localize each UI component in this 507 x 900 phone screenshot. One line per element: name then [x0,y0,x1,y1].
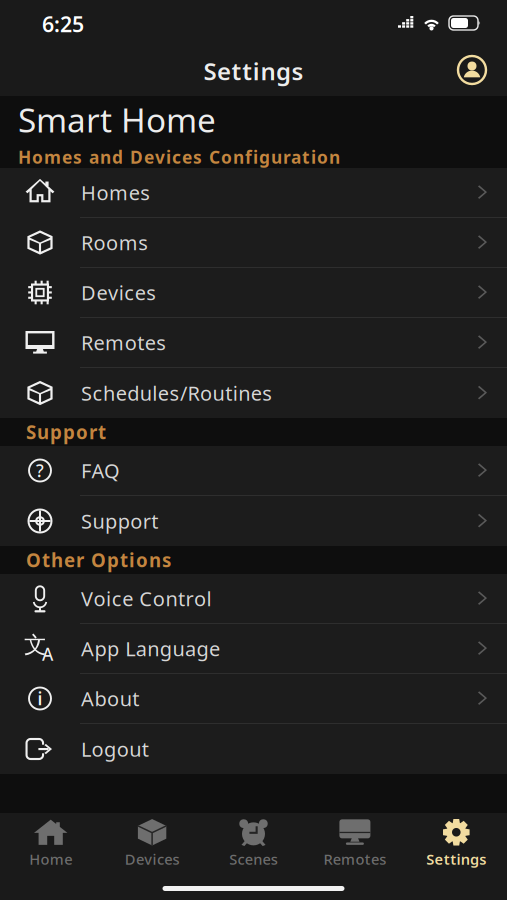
staticText: FAQ [81,457,120,484]
staticText: App Language [81,635,220,662]
staticText: Devices [125,849,179,869]
staticText: Remotes [323,849,386,869]
staticText: 文 [24,631,47,659]
staticText: i [37,687,42,710]
staticText: Smart Home [18,97,216,142]
staticText: A [42,642,53,665]
button[interactable]: 文 [0,624,507,674]
staticText: ? [36,459,44,482]
button[interactable]: Devices [0,268,507,318]
staticText: Support [26,420,106,444]
button[interactable]: ? [0,446,507,496]
staticText: Devices [81,279,156,306]
button[interactable]: Logout [0,724,507,774]
button[interactable]: Profile [455,53,489,87]
button[interactable]: Remotes [0,318,507,368]
staticText: About [81,685,139,712]
staticText: Homes and Devices Configuration [18,146,340,169]
button[interactable]: i [0,674,507,724]
button[interactable]: Home [0,816,101,871]
staticText: Other Options [26,548,171,572]
staticText: Homes [81,179,150,206]
staticText: Schedules/Routines [81,380,272,406]
staticText: 6:25 [42,10,84,38]
staticText: Logout [81,736,149,762]
staticText: Home [29,849,72,869]
staticText: Support [81,508,158,534]
staticText: Remotes [81,329,166,356]
button[interactable]: Homes [0,168,507,218]
button[interactable]: Settings [406,816,507,871]
button[interactable]: Remotes [304,816,406,871]
button[interactable]: Rooms [0,218,507,268]
button[interactable]: Scenes [203,816,304,871]
staticText: Settings [426,849,486,869]
button[interactable]: Voice Control [0,574,507,624]
staticText: Settings [203,55,304,87]
button[interactable]: Support [0,496,507,546]
button[interactable]: Schedules/Routines [0,368,507,418]
staticText: Scenes [229,849,278,869]
button[interactable]: Devices [101,816,203,871]
staticText: Rooms [81,229,148,256]
staticText: Voice Control [81,585,212,612]
